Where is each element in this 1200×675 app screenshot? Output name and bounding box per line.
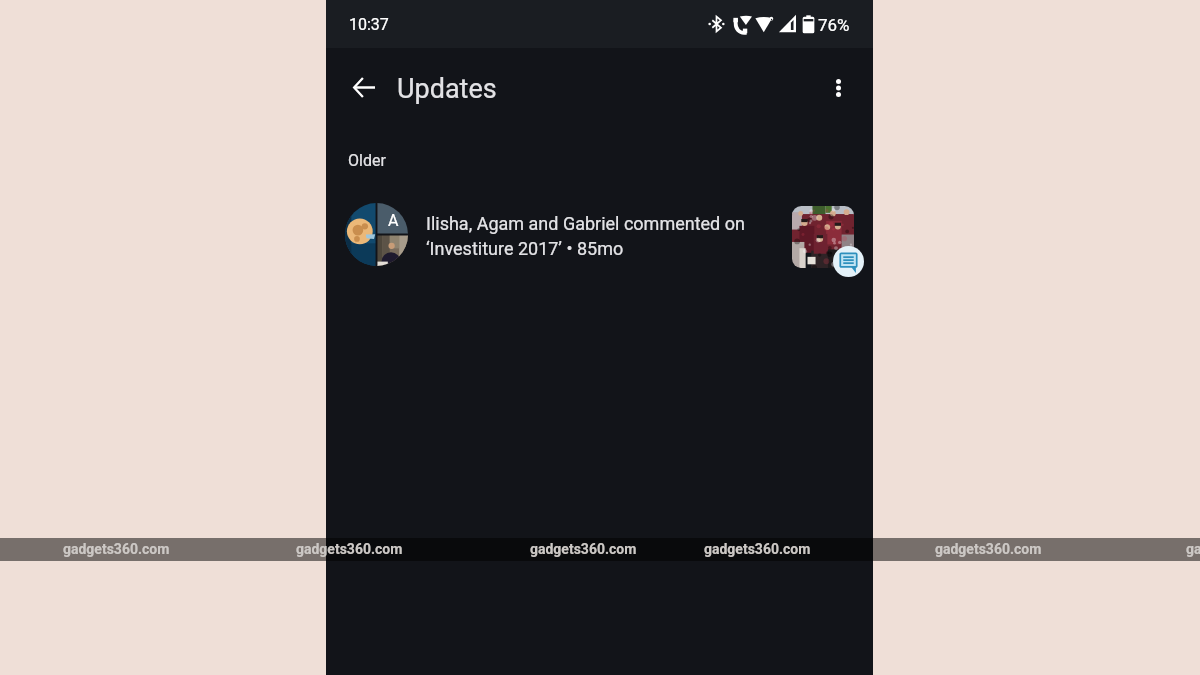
staticText: ‘Investiture 2017’ • 85mo [426,238,624,259]
button[interactable]: Back [340,64,387,111]
staticText: gadgets360.com [296,541,403,557]
staticText: gadgets360.com [1186,541,1200,557]
staticText: gadgets360.com [704,541,811,557]
staticText: A [388,211,399,230]
staticText: Older [348,151,386,170]
button[interactable]: A [326,190,873,282]
staticText: gadgets360.com [530,541,637,557]
staticText: gadgets360.com [63,541,170,557]
staticText: gadgets360.com [935,541,1042,557]
button[interactable]: More options [815,64,862,111]
staticText: 10:37 [349,15,389,34]
staticText: 76% [818,15,850,35]
staticText: Updates [397,73,497,105]
staticText: Ilisha, Agam and Gabriel commented on [426,213,745,234]
